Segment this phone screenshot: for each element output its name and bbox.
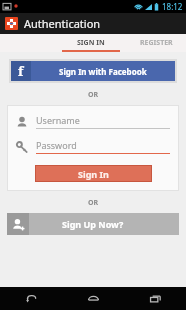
staticText: f	[18, 62, 24, 80]
staticText: Password	[36, 139, 77, 151]
staticText: OR	[88, 198, 99, 208]
button[interactable]: Back	[0, 287, 62, 310]
staticText: Sign Up Now?	[62, 218, 124, 230]
button[interactable]: f	[11, 61, 175, 81]
button[interactable]: Home	[62, 287, 124, 310]
staticText: Sign In with Facebook	[59, 66, 147, 77]
staticText: REGISTER	[140, 38, 173, 48]
button[interactable]: Recent apps	[124, 287, 186, 310]
staticText: Sign In	[78, 168, 109, 180]
staticText: SIGN IN	[77, 38, 105, 48]
staticText: 18:12	[162, 1, 183, 12]
button[interactable]: Password	[16, 139, 170, 154]
button[interactable]: Sign Up Now?	[7, 213, 179, 235]
button[interactable]: Username	[16, 114, 170, 129]
button[interactable]: REGISTER	[126, 34, 186, 52]
staticText: OR	[88, 90, 99, 100]
staticText: Username	[36, 114, 80, 126]
button[interactable]: SIGN IN	[55, 34, 126, 52]
staticText: Authentication	[24, 16, 101, 31]
button[interactable]: Sign In	[35, 165, 152, 182]
